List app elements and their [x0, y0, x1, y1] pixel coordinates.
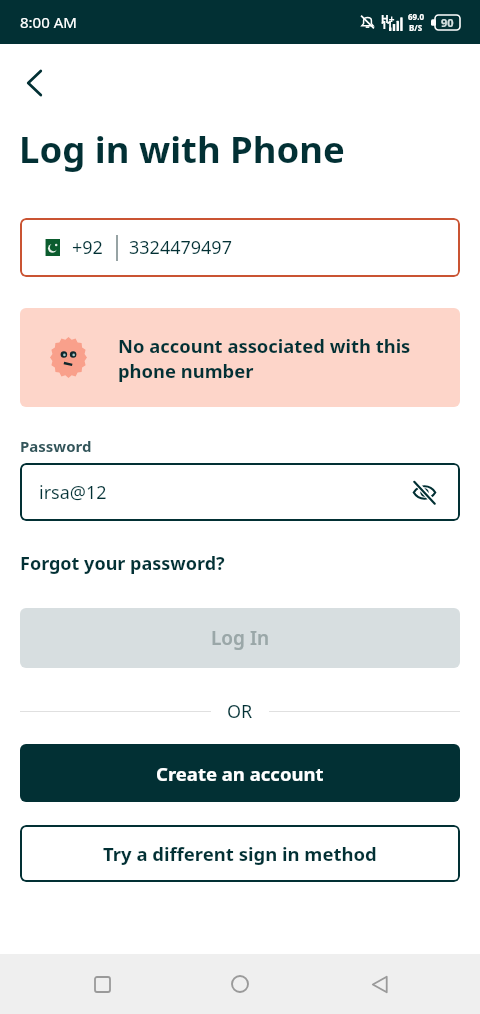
staticText: +92 — [72, 235, 103, 260]
staticText: H+ — [381, 12, 395, 26]
staticText: OR — [227, 699, 253, 723]
button[interactable]: Forgot your password? — [20, 551, 225, 576]
staticText: 11 — [381, 18, 393, 32]
staticText: B/S — [409, 22, 423, 33]
button[interactable]: Show password — [400, 468, 448, 516]
button[interactable]: Back — [12, 60, 57, 105]
button[interactable]: Back — [340, 954, 420, 1014]
staticText: Create an account — [156, 761, 324, 786]
button[interactable]: Home — [200, 954, 280, 1014]
staticText: No account associated with this phone nu… — [118, 333, 413, 383]
button[interactable]: Log In — [20, 608, 460, 668]
staticText: Log In — [211, 625, 270, 651]
staticText: irsa@12 — [39, 480, 107, 505]
staticText: 3324479497 — [129, 235, 232, 260]
button[interactable]: irsa@12 — [20, 463, 460, 521]
staticText: 90 — [441, 15, 454, 30]
staticText: 69.0 — [408, 11, 424, 22]
staticText: Password — [20, 436, 92, 456]
button[interactable]: Create an account — [20, 744, 460, 802]
button[interactable]: Recents — [62, 954, 142, 1014]
staticText: 8:00 AM — [20, 12, 77, 32]
staticText: Try a different sign in method — [103, 841, 377, 866]
button[interactable]: +92 — [20, 218, 460, 277]
button[interactable]: Try a different sign in method — [20, 825, 460, 882]
staticText: Log in with Phone — [19, 124, 345, 174]
